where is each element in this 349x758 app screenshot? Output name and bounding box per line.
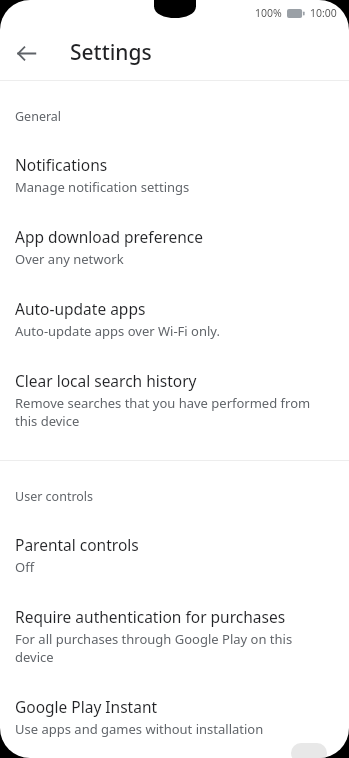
staticText: For all purchases through Google Play on… xyxy=(15,630,334,666)
button[interactable]: Clear local search history xyxy=(0,370,349,430)
button[interactable]: App download preference xyxy=(0,226,349,268)
button[interactable]: Require authentication for purchases xyxy=(0,606,349,666)
staticText: Notifications xyxy=(15,154,108,175)
staticText: Google Play Instant xyxy=(15,696,158,717)
staticText: Off xyxy=(15,558,35,576)
staticText: Manage notification settings xyxy=(15,178,190,196)
button[interactable]: Back xyxy=(8,35,44,71)
staticText: Auto-update apps over Wi-Fi only. xyxy=(15,322,220,340)
staticText: 10:00 xyxy=(310,6,337,20)
staticText: Use apps and games without installation xyxy=(15,720,264,738)
button[interactable]: Google Play Instant xyxy=(0,696,349,738)
button[interactable]: Notifications xyxy=(0,154,349,196)
staticText: Over any network xyxy=(15,250,124,268)
staticText: 100% xyxy=(255,6,282,20)
staticText: App download preference xyxy=(15,226,204,247)
staticText: Remove searches that you have performed … xyxy=(15,394,334,430)
staticText: Clear local search history xyxy=(15,370,197,391)
staticText: Parental controls xyxy=(15,534,139,555)
staticText: General xyxy=(15,108,62,125)
button[interactable]: Parental controls xyxy=(0,534,349,576)
staticText: Settings xyxy=(70,38,152,67)
staticText: Auto-update apps xyxy=(15,298,146,319)
staticText: Require authentication for purchases xyxy=(15,606,286,627)
staticText: User controls xyxy=(15,488,94,505)
button[interactable]: Auto-update apps xyxy=(0,298,349,340)
